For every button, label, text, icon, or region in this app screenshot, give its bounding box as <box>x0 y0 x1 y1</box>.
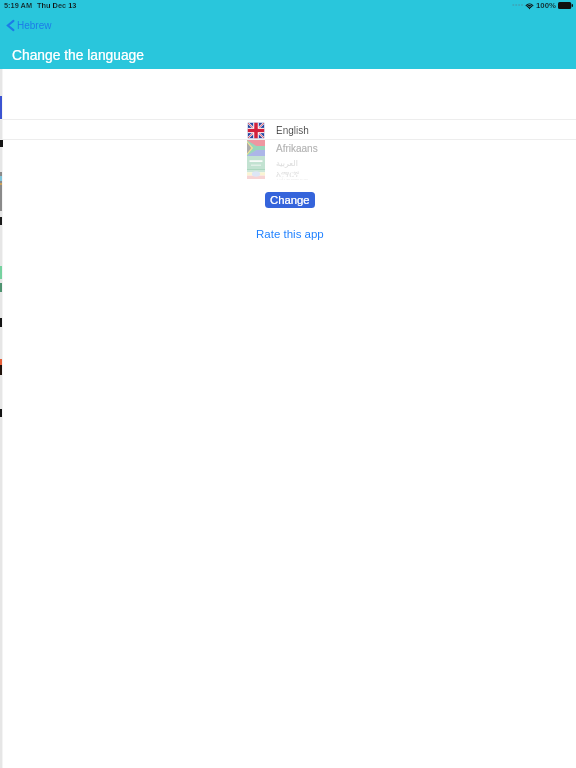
button[interactable]: Rate this app <box>255 227 325 242</box>
button[interactable]: English <box>247 121 309 139</box>
staticText: 100% <box>536 1 556 10</box>
staticText: Change <box>270 194 310 207</box>
staticText: العربية <box>276 159 298 168</box>
staticText: Rate this app <box>256 228 324 241</box>
staticText: မန်မာဘာသာ <box>277 176 309 180</box>
button[interactable]: Back to Hebrew <box>7 19 56 32</box>
button[interactable]: Change <box>265 192 315 208</box>
staticText: Hebrew <box>17 20 52 31</box>
staticText: Thu Dec 13 <box>37 1 77 9</box>
staticText: English <box>276 125 309 136</box>
staticText: 5:19 AM <box>4 1 33 9</box>
staticText: Afrikaans <box>276 143 318 154</box>
staticText: Change the language <box>12 48 144 63</box>
staticText: አማርኛ <box>276 170 300 179</box>
